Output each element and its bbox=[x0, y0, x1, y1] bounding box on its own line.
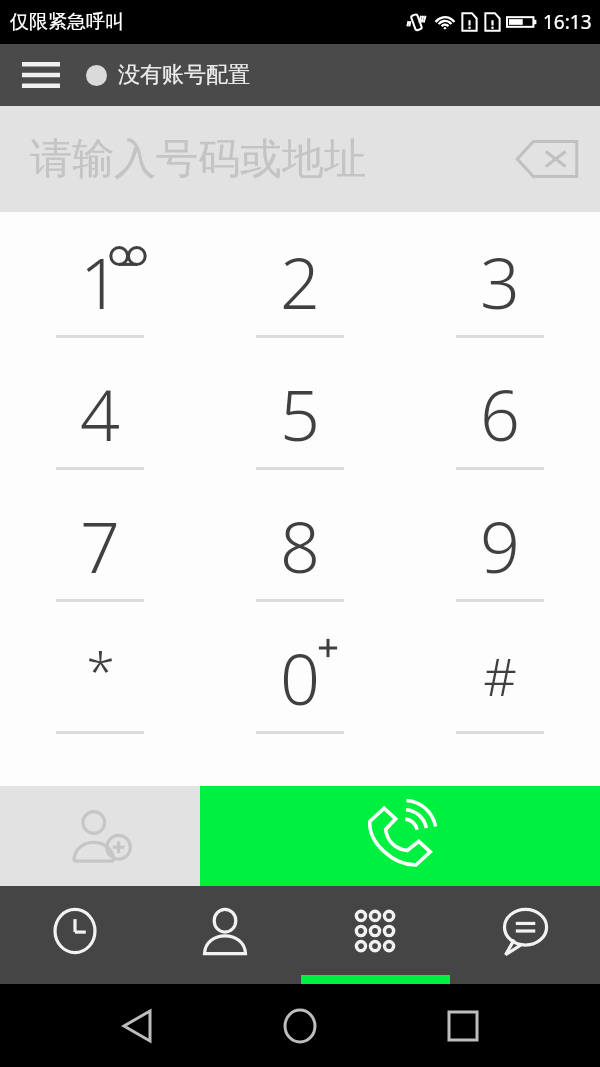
button[interactable]: * bbox=[0, 620, 200, 752]
button[interactable]: # bbox=[400, 620, 600, 752]
button[interactable]: 0 bbox=[200, 620, 400, 752]
staticText: 7 bbox=[80, 498, 120, 593]
button[interactable]: Call bbox=[200, 786, 600, 886]
staticText: 0 bbox=[280, 630, 320, 725]
staticText: 2 bbox=[280, 234, 320, 329]
staticText: 没有账号配置 bbox=[118, 61, 250, 89]
staticText: # bbox=[483, 640, 517, 711]
button[interactable]: Recents bbox=[436, 999, 490, 1053]
button[interactable]: Dialpad bbox=[300, 886, 450, 984]
staticText: 仅限紧急呼叫 bbox=[10, 10, 124, 34]
staticText: 8 bbox=[280, 498, 320, 593]
button[interactable]: 2 bbox=[200, 224, 400, 356]
button[interactable]: Backspace bbox=[508, 120, 586, 198]
button[interactable]: 4 bbox=[0, 356, 200, 488]
button[interactable]: 7 bbox=[0, 488, 200, 620]
staticText: 请输入号码或地址 bbox=[30, 133, 366, 186]
button[interactable]: Home bbox=[273, 999, 327, 1053]
button[interactable]: 5 bbox=[200, 356, 400, 488]
button[interactable]: 9 bbox=[400, 488, 600, 620]
button[interactable]: Menu bbox=[10, 44, 72, 106]
button[interactable]: 1 bbox=[0, 224, 200, 356]
staticText: 9 bbox=[480, 498, 520, 593]
button[interactable]: Recent calls bbox=[0, 886, 150, 984]
button[interactable]: 8 bbox=[200, 488, 400, 620]
staticText: 16:13 bbox=[543, 9, 592, 35]
staticText: 4 bbox=[80, 366, 120, 461]
button[interactable]: 3 bbox=[400, 224, 600, 356]
button[interactable]: Messages bbox=[450, 886, 600, 984]
staticText: * bbox=[86, 634, 115, 705]
button[interactable]: Back bbox=[110, 999, 164, 1053]
button[interactable]: 没有账号配置 bbox=[86, 61, 250, 89]
button[interactable]: Contacts bbox=[150, 886, 300, 984]
staticText: 1 bbox=[80, 234, 120, 329]
staticText: 3 bbox=[480, 234, 520, 329]
staticText: 6 bbox=[480, 366, 520, 461]
button[interactable]: 6 bbox=[400, 356, 600, 488]
staticText: 5 bbox=[280, 366, 320, 461]
button[interactable]: Add contact bbox=[0, 786, 200, 886]
